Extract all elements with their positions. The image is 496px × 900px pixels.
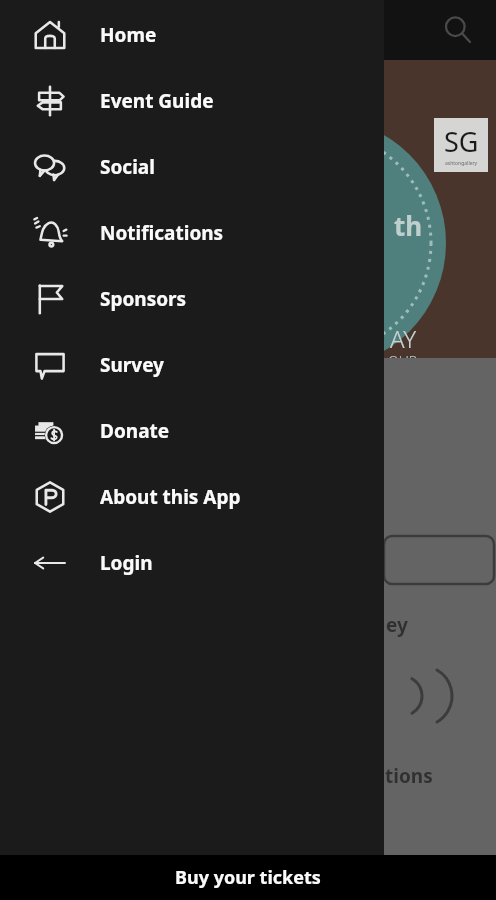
- button[interactable]: Event Guide: [0, 68, 384, 134]
- staticText: AY: [390, 322, 416, 355]
- staticText: Social: [100, 154, 155, 180]
- staticText: SG: [444, 123, 479, 160]
- staticText: Buy your tickets: [175, 865, 321, 890]
- button[interactable]: Survey: [0, 332, 384, 398]
- staticText: tions: [385, 763, 433, 789]
- button[interactable]: Login: [0, 530, 384, 596]
- staticText: Home: [100, 22, 157, 48]
- staticText: ashtongallery: [445, 160, 478, 167]
- staticText: OUR: [388, 352, 418, 371]
- staticText: Login: [100, 550, 153, 576]
- button[interactable]: Search: [436, 8, 480, 52]
- button[interactable]: Social: [0, 134, 384, 200]
- button[interactable]: Sponsors: [0, 266, 384, 332]
- staticText: ey: [386, 612, 408, 638]
- staticText: About this App: [100, 484, 241, 510]
- staticText: Event Guide: [100, 88, 214, 114]
- button[interactable]: About this App: [0, 464, 384, 530]
- staticText: Survey: [100, 352, 164, 378]
- button[interactable]: Donate: [0, 398, 384, 464]
- button[interactable]: Notifications: [0, 200, 384, 266]
- button[interactable]: Home: [0, 2, 384, 68]
- staticText: th: [394, 208, 423, 243]
- staticText: Donate: [100, 418, 170, 444]
- staticText: Sponsors: [100, 286, 187, 312]
- button[interactable]: Buy your tickets: [0, 855, 496, 900]
- staticText: Notifications: [100, 220, 224, 246]
